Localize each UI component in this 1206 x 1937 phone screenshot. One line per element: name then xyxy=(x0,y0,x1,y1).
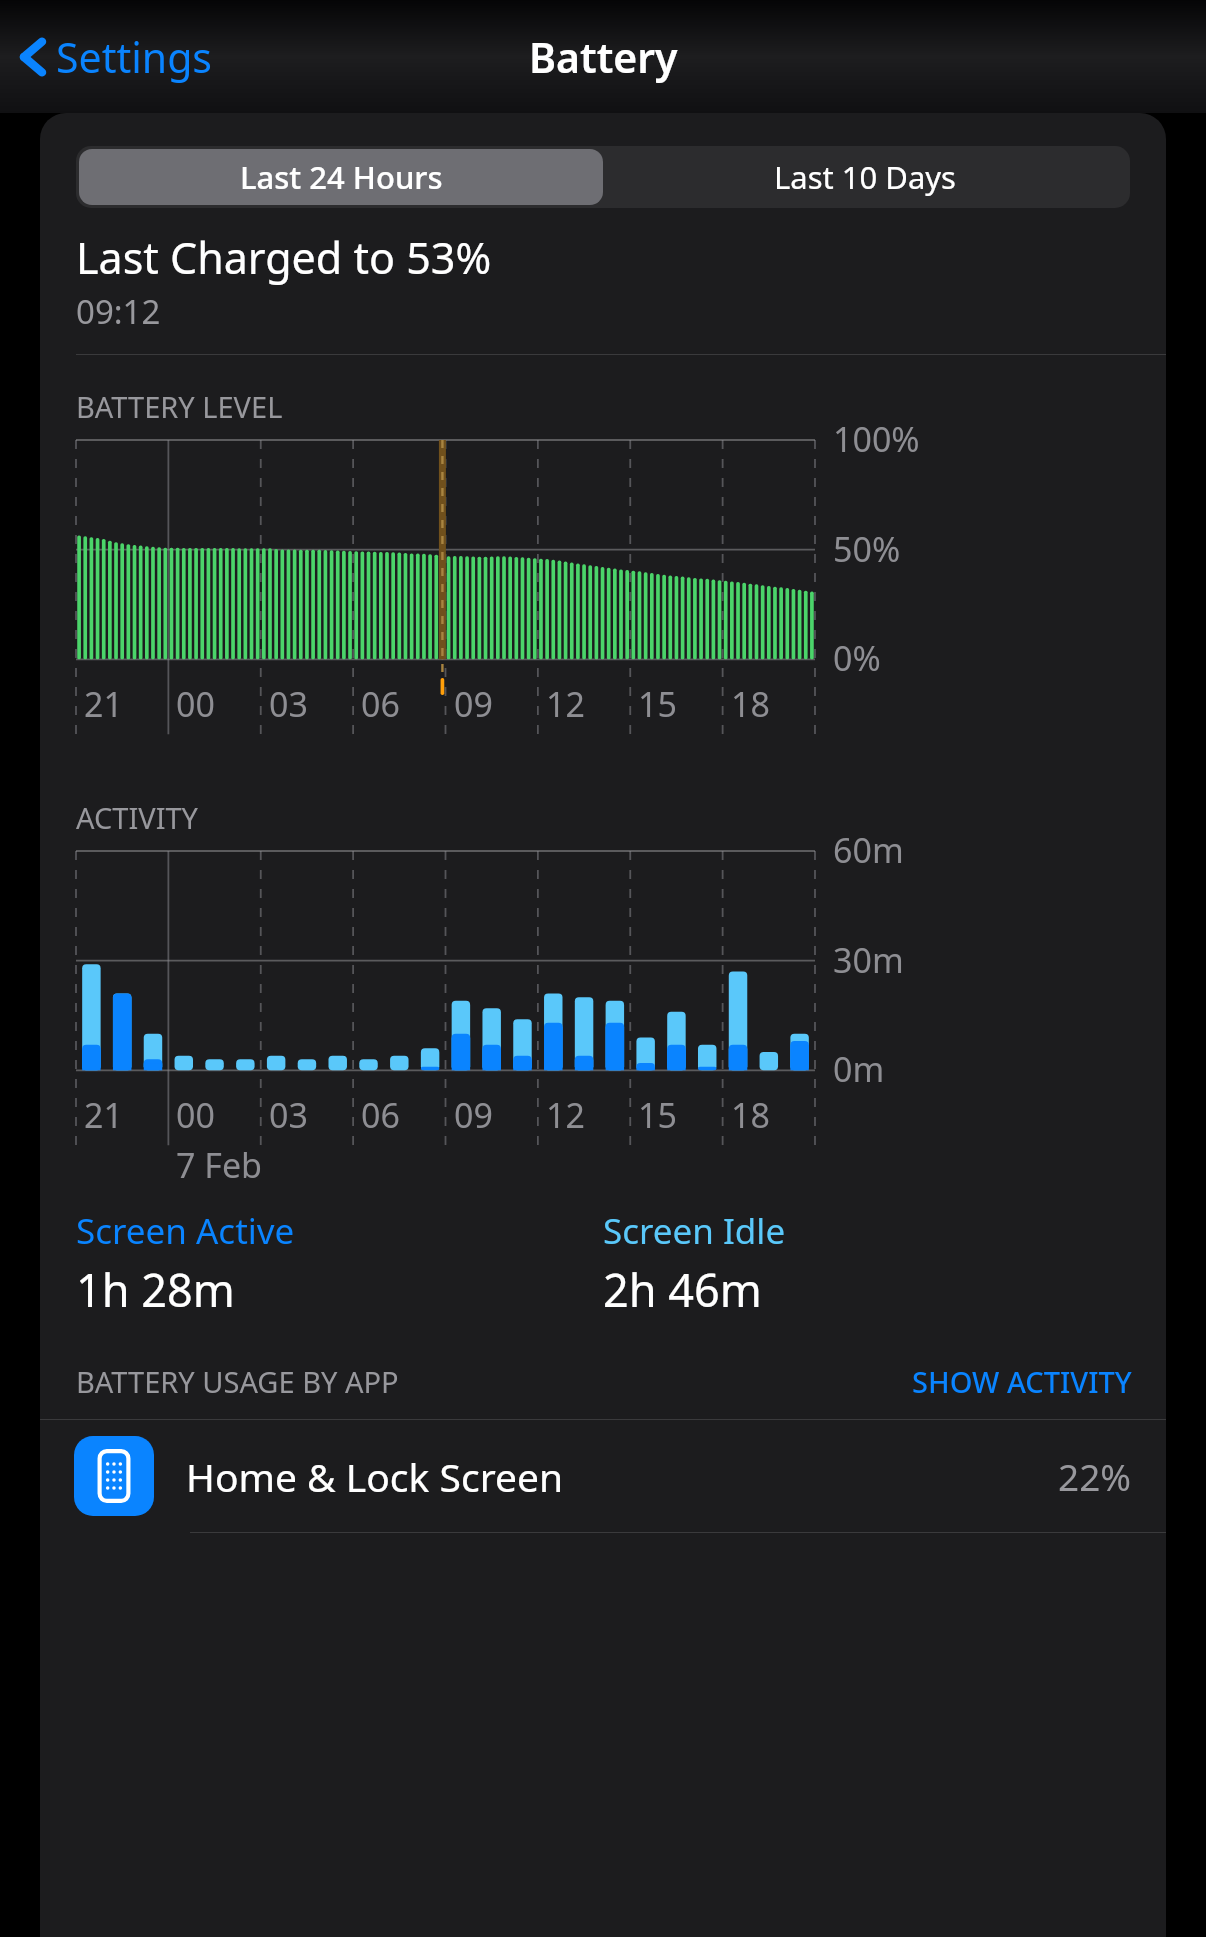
staticText: 15 xyxy=(638,681,677,727)
staticText: 1h 28m xyxy=(76,1259,235,1320)
staticText: 12 xyxy=(546,681,585,727)
staticText: BATTERY LEVEL xyxy=(76,387,283,426)
staticText: 18 xyxy=(731,1092,770,1138)
staticText: SHOW ACTIVITY xyxy=(912,1362,1132,1401)
staticText: 21 xyxy=(84,681,123,727)
staticText: 21 xyxy=(84,1092,123,1138)
staticText: Last 24 Hours xyxy=(240,156,443,198)
staticText: Home & Lock Screen xyxy=(186,1450,564,1503)
staticText: 2h 46m xyxy=(603,1259,762,1320)
staticText: BATTERY USAGE BY APP xyxy=(76,1362,399,1401)
staticText: 0m xyxy=(833,1046,885,1092)
staticText: Battery xyxy=(529,29,678,85)
staticText: Screen Active xyxy=(76,1207,295,1255)
staticText: 15 xyxy=(638,1092,677,1138)
staticText: 18 xyxy=(731,681,770,727)
button[interactable]: Last 10 Days xyxy=(603,149,1127,205)
staticText: 09:12 xyxy=(76,289,161,334)
staticText: Screen Idle xyxy=(603,1207,786,1255)
staticText: Last 10 Days xyxy=(774,156,956,198)
staticText: 0% xyxy=(833,635,881,681)
staticText: 00 xyxy=(176,1092,215,1138)
staticText: 22% xyxy=(1058,1451,1132,1501)
staticText: 30m xyxy=(833,937,904,983)
button[interactable]: Home & Lock Screen icon xyxy=(40,1420,1166,1532)
staticText: 03 xyxy=(269,681,308,727)
staticText: ACTIVITY xyxy=(76,798,199,837)
staticText: 60m xyxy=(833,827,904,873)
button[interactable]: SHOW ACTIVITY xyxy=(912,1362,1132,1401)
staticText: 09 xyxy=(454,1092,493,1138)
other: Back to Settings xyxy=(18,33,48,81)
staticText: 06 xyxy=(361,681,400,727)
staticText: 100% xyxy=(833,416,920,462)
staticText: 09 xyxy=(454,681,493,727)
other: Home & Lock Screen icon xyxy=(74,1436,154,1516)
button[interactable]: Back to Settings xyxy=(12,19,219,95)
staticText: Last Charged to 53% xyxy=(76,228,492,287)
staticText: 06 xyxy=(361,1092,400,1138)
button[interactable]: Last 24 Hours xyxy=(79,149,603,205)
staticText: 00 xyxy=(176,681,215,727)
staticText: 50% xyxy=(833,526,901,572)
staticText: 7 Feb xyxy=(176,1142,263,1188)
staticText: 03 xyxy=(269,1092,308,1138)
staticText: 12 xyxy=(546,1092,585,1138)
staticText: Settings xyxy=(56,29,213,85)
